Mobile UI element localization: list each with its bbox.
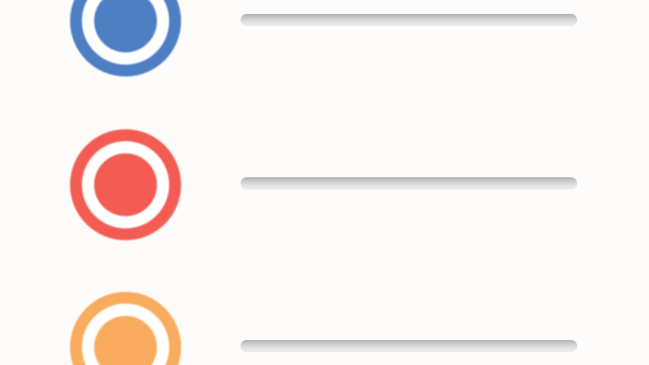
- button[interactable]: Red item: [68, 127, 183, 242]
- button[interactable]: Orange item: [68, 290, 183, 365]
- button[interactable]: Blue item: [68, 0, 183, 79]
